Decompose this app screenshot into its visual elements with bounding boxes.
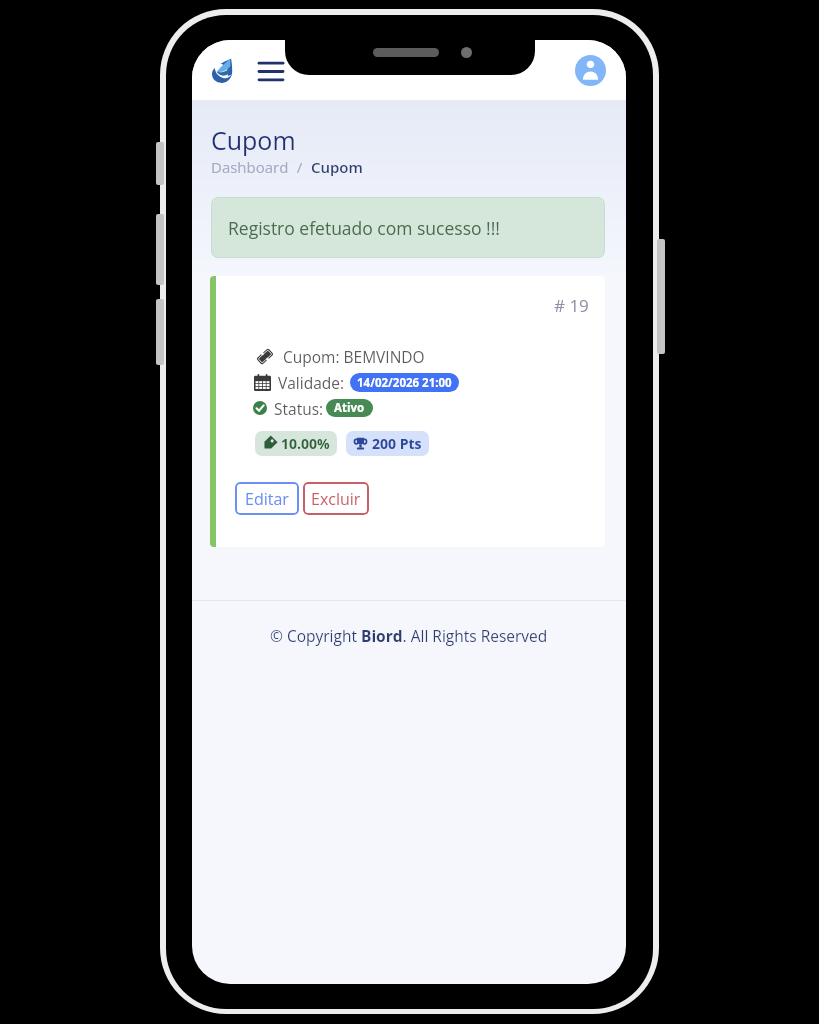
staticText: Validade:	[278, 372, 345, 393]
staticText: Ativo	[334, 400, 365, 416]
staticText: 14/02/2026 21:00	[357, 375, 452, 391]
staticText: /	[289, 157, 311, 177]
button[interactable]: Editar	[235, 482, 299, 515]
staticText: # 19	[554, 294, 589, 317]
staticText: Registro efetuado com sucesso !!!	[228, 216, 500, 240]
button[interactable]: Dashboard	[211, 157, 289, 177]
staticText: Cupom	[211, 123, 296, 157]
staticText: 200 Pts	[372, 434, 422, 453]
button[interactable]: Excluir	[303, 482, 369, 515]
button[interactable]: Menu	[254, 56, 288, 86]
button[interactable]: Account	[575, 55, 606, 86]
staticText: 10.00%	[281, 434, 330, 453]
staticText: Status:	[274, 398, 324, 419]
staticText: Excluir	[311, 488, 361, 510]
staticText: © Copyright Biord. All Rights Reserved	[270, 625, 548, 646]
button[interactable]: Biord home	[206, 54, 238, 86]
staticText: Cupom: BEMVINDO	[283, 346, 425, 367]
staticText: Editar	[245, 488, 289, 510]
staticText: Cupom	[311, 157, 363, 177]
